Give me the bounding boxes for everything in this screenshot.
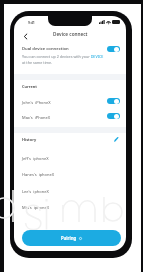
staticText: Mia's iphoneX xyxy=(22,205,50,210)
button[interactable]: Hanes's iphoneX xyxy=(14,167,126,183)
button[interactable]: Toggle connection xyxy=(107,113,120,119)
button[interactable]: Pairing xyxy=(22,230,121,246)
button[interactable]: Back xyxy=(18,29,32,43)
staticText: Device connect xyxy=(53,31,88,37)
button[interactable]: Mia's iphoneX xyxy=(14,200,126,216)
button[interactable]: Toggle connection xyxy=(107,46,120,52)
staticText: Hanes's iphoneX xyxy=(22,172,55,177)
staticText: John's iPhoneX xyxy=(22,100,51,105)
staticText: History xyxy=(22,137,37,142)
staticText: You can connect up 2 devices with your D… xyxy=(22,54,104,59)
button[interactable]: John's iPhoneX xyxy=(14,95,126,111)
button[interactable]: Max's iPhoneX xyxy=(14,110,126,126)
button[interactable]: Lee's iphoneX xyxy=(14,184,126,200)
staticText: 9:41 xyxy=(28,20,35,25)
staticText: Pairing xyxy=(61,235,77,241)
staticText: Current xyxy=(22,84,37,89)
button[interactable]: Toggle connection xyxy=(107,98,120,104)
staticText: Lee's iphoneX xyxy=(22,189,49,194)
staticText: Jeff's iphoneX xyxy=(22,156,49,161)
button[interactable]: Jeff's iphoneX xyxy=(14,151,126,167)
staticText: Max's iPhoneX xyxy=(22,115,51,120)
staticText: at the same time. xyxy=(22,60,53,65)
staticText: Dual device connection xyxy=(22,46,69,52)
button[interactable]: Edit xyxy=(109,132,123,146)
